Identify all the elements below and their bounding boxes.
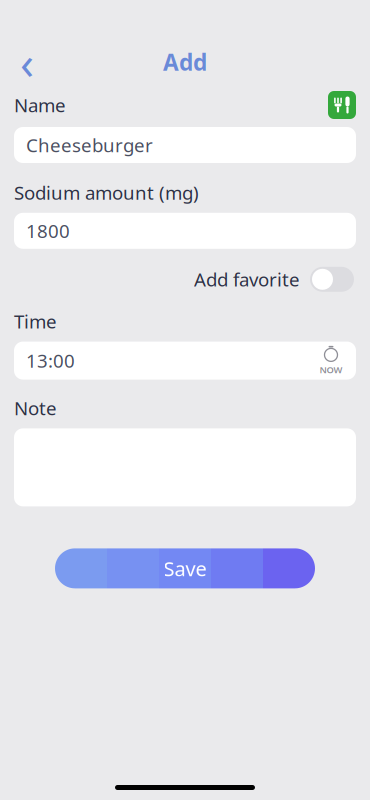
staticText: 13:00 <box>26 348 75 373</box>
staticText: Add <box>163 47 207 77</box>
staticText: 1800 <box>26 218 70 243</box>
staticText: Note <box>14 396 57 420</box>
staticText: Sodium amount (mg) <box>14 180 199 205</box>
button[interactable]: Choose food <box>328 91 356 119</box>
staticText: Add favorite <box>194 267 300 292</box>
button[interactable]: Save <box>55 548 315 588</box>
staticText: Time <box>14 309 57 334</box>
staticText: NOW <box>319 363 342 376</box>
button[interactable]: 1800 <box>14 213 356 249</box>
staticText: ‹ <box>20 32 34 92</box>
staticText: Save <box>163 555 206 582</box>
button[interactable]: 13:00 <box>14 342 356 380</box>
button[interactable]: Back <box>10 45 44 79</box>
staticText: Name <box>14 93 66 117</box>
button[interactable]: Add favorite <box>16 267 354 292</box>
staticText: Cheeseburger <box>26 133 153 157</box>
button[interactable]: Cheeseburger <box>14 127 356 163</box>
